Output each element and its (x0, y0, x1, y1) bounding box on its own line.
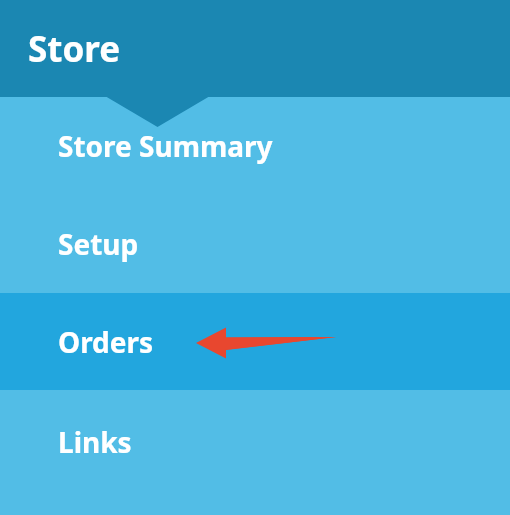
staticText: Orders (58, 323, 154, 361)
button[interactable]: Store (0, 0, 510, 97)
button[interactable]: Links (0, 390, 510, 494)
staticText: Setup (58, 225, 139, 263)
button[interactable]: Store Summary (0, 97, 510, 195)
button[interactable]: Orders (0, 293, 510, 390)
staticText: Links (58, 423, 132, 461)
button[interactable]: Setup (0, 195, 510, 293)
other: Pointer indicating Orders (0, 293, 510, 390)
staticText: Store (28, 25, 121, 73)
staticText: Store Summary (58, 127, 273, 165)
